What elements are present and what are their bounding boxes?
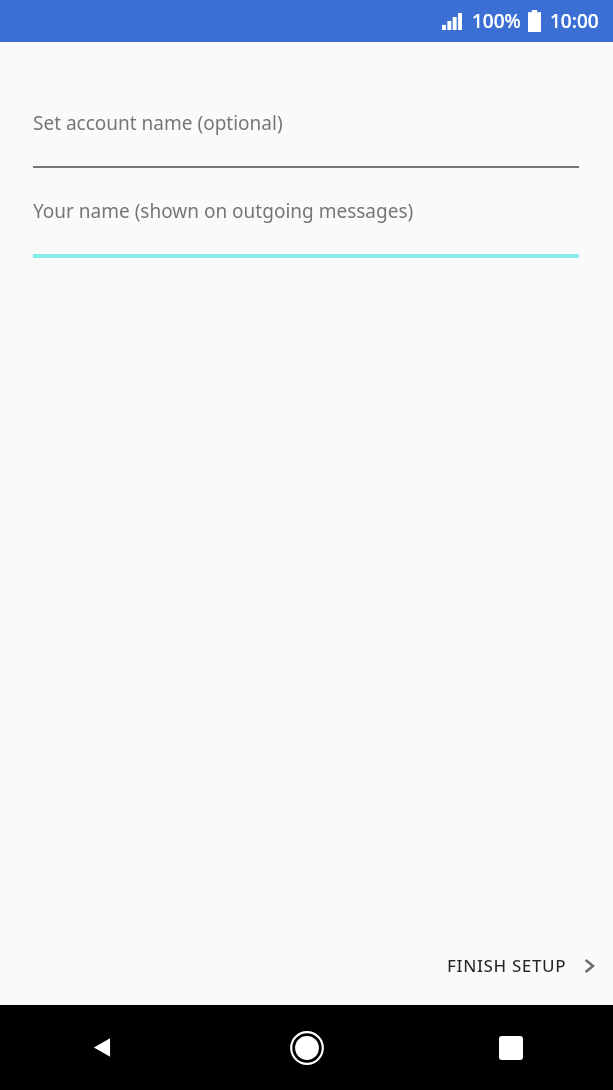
staticText: 100%: [472, 8, 521, 34]
staticText: Set account name (optional): [33, 110, 283, 136]
button[interactable]: Your name (shown on outgoing messages): [33, 198, 579, 258]
staticText: Your name (shown on outgoing messages): [33, 198, 414, 224]
staticText: 10:00: [550, 8, 599, 34]
button[interactable]: Home: [205, 1005, 409, 1090]
button[interactable]: Recent apps: [409, 1005, 613, 1090]
staticText: FINISH SETUP: [447, 954, 567, 977]
button[interactable]: Back: [0, 1005, 205, 1090]
button[interactable]: Set account name (optional): [33, 110, 579, 168]
button[interactable]: FINISH SETUP: [423, 940, 613, 991]
